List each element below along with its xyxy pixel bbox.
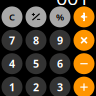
button[interactable]: Plus or minus	[24, 5, 48, 29]
staticText: 001	[56, 0, 89, 11]
staticText: 5	[33, 57, 39, 71]
staticText: 4	[9, 57, 15, 71]
button[interactable]: 3	[48, 75, 72, 96]
button[interactable]: Divide	[72, 5, 96, 29]
button[interactable]: 8	[24, 29, 48, 52]
button[interactable]: 9	[48, 29, 72, 52]
staticText: 7	[9, 33, 15, 47]
staticText: 8	[33, 33, 39, 47]
button[interactable]: Percent	[48, 5, 72, 29]
staticText: 1	[9, 80, 15, 94]
button[interactable]: 7	[0, 29, 24, 52]
button[interactable]: 4	[0, 52, 24, 75]
staticText: 3	[57, 80, 63, 94]
button[interactable]: Clear	[0, 5, 24, 29]
staticText: C	[9, 11, 15, 23]
button[interactable]: 1	[0, 75, 24, 96]
staticText: 6	[57, 57, 63, 71]
button[interactable]: Plus	[72, 75, 96, 96]
button[interactable]: 5	[24, 52, 48, 75]
button[interactable]: 6	[48, 52, 72, 75]
button[interactable]: Minus	[72, 52, 96, 75]
staticText: %	[56, 11, 64, 23]
staticText: 2	[33, 80, 39, 94]
staticText: 9	[57, 33, 63, 47]
button[interactable]: Multiply	[72, 29, 96, 52]
button[interactable]: 2	[24, 75, 48, 96]
